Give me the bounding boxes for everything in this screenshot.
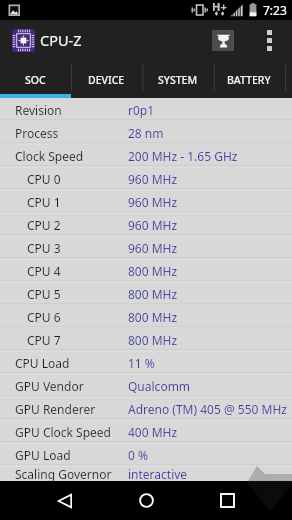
button[interactable]: DEVICE xyxy=(71,60,142,94)
staticText: CPU 0 xyxy=(27,171,61,187)
staticText: 7:23 xyxy=(263,2,287,18)
button[interactable]: CPU 1 xyxy=(0,190,292,213)
button[interactable]: CPU 4 xyxy=(0,259,292,282)
button[interactable]: GPU Renderer xyxy=(0,397,292,420)
staticText: CPU 6 xyxy=(27,309,61,325)
staticText: Qualcomm xyxy=(128,378,191,394)
staticText: Process xyxy=(15,125,59,141)
button[interactable]: Revision xyxy=(0,98,292,121)
button[interactable]: Scaling Governor xyxy=(0,466,292,481)
staticText: 200 MHz - 1.65 GHz xyxy=(128,148,238,164)
button[interactable]: GPU Vendor xyxy=(0,374,292,397)
staticText: 400 MHz xyxy=(128,424,178,440)
button[interactable]: CPU 6 xyxy=(0,305,292,328)
staticText: SOC xyxy=(25,73,46,87)
button[interactable]: Recent apps xyxy=(205,481,249,520)
button[interactable]: Process xyxy=(0,121,292,144)
staticText: CPU 7 xyxy=(27,332,61,348)
button[interactable]: CPU 0 xyxy=(0,167,292,190)
staticText: 960 MHz xyxy=(128,217,178,233)
button[interactable]: GPU Load xyxy=(0,443,292,466)
button[interactable]: Clock Speed xyxy=(0,144,292,167)
staticText: GPU Load xyxy=(15,447,71,463)
staticText: 800 MHz xyxy=(128,286,178,302)
staticText: interactive xyxy=(128,466,188,481)
staticText: 800 MHz xyxy=(128,263,178,279)
button[interactable]: GPU Clock Speed xyxy=(0,420,292,443)
button[interactable]: SYSTEM xyxy=(142,60,213,94)
staticText: DEVICE xyxy=(88,73,125,87)
staticText: 800 MHz xyxy=(128,332,178,348)
staticText: GPU Clock Speed xyxy=(15,424,112,440)
staticText: SYSTEM xyxy=(158,73,198,87)
button[interactable]: CPU 7 xyxy=(0,328,292,351)
staticText: 960 MHz xyxy=(128,194,178,210)
staticText: Revision xyxy=(15,102,62,118)
staticText: Scaling Governor xyxy=(15,466,112,481)
button[interactable]: CPU Load xyxy=(0,351,292,374)
staticText: 11 % xyxy=(128,355,155,371)
staticText: Adreno (TM) 405 @ 550 MHz xyxy=(128,401,287,417)
staticText: CPU 1 xyxy=(27,194,61,210)
staticText: CPU 5 xyxy=(27,286,61,302)
button[interactable]: More options xyxy=(253,24,285,56)
staticText: r0p1 xyxy=(128,102,155,118)
staticText: 960 MHz xyxy=(128,240,178,256)
button[interactable]: CPU 5 xyxy=(0,282,292,305)
button[interactable]: Back xyxy=(43,481,87,520)
staticText: 28 nm xyxy=(128,125,164,141)
staticText: CPU-Z xyxy=(40,30,82,50)
button[interactable]: SOC xyxy=(0,60,71,94)
staticText: 800 MHz xyxy=(128,309,178,325)
staticText: CPU Load xyxy=(15,355,70,371)
staticText: BATTERY xyxy=(227,73,271,87)
button[interactable]: Benchmark xyxy=(206,23,240,57)
staticText: CPU 2 xyxy=(27,217,61,233)
staticText: Clock Speed xyxy=(15,148,84,164)
staticText: 0 % xyxy=(128,447,148,463)
staticText: 960 MHz xyxy=(128,171,178,187)
button[interactable]: Home xyxy=(124,481,168,520)
staticText: H+ xyxy=(212,0,227,14)
staticText: CPU 3 xyxy=(27,240,61,256)
button[interactable]: CPU 2 xyxy=(0,213,292,236)
staticText: GPU Vendor xyxy=(15,378,84,394)
staticText: CPU 4 xyxy=(27,263,61,279)
button[interactable]: CPU 3 xyxy=(0,236,292,259)
button[interactable]: BATTERY xyxy=(213,60,284,94)
staticText: GPU Renderer xyxy=(15,401,96,417)
